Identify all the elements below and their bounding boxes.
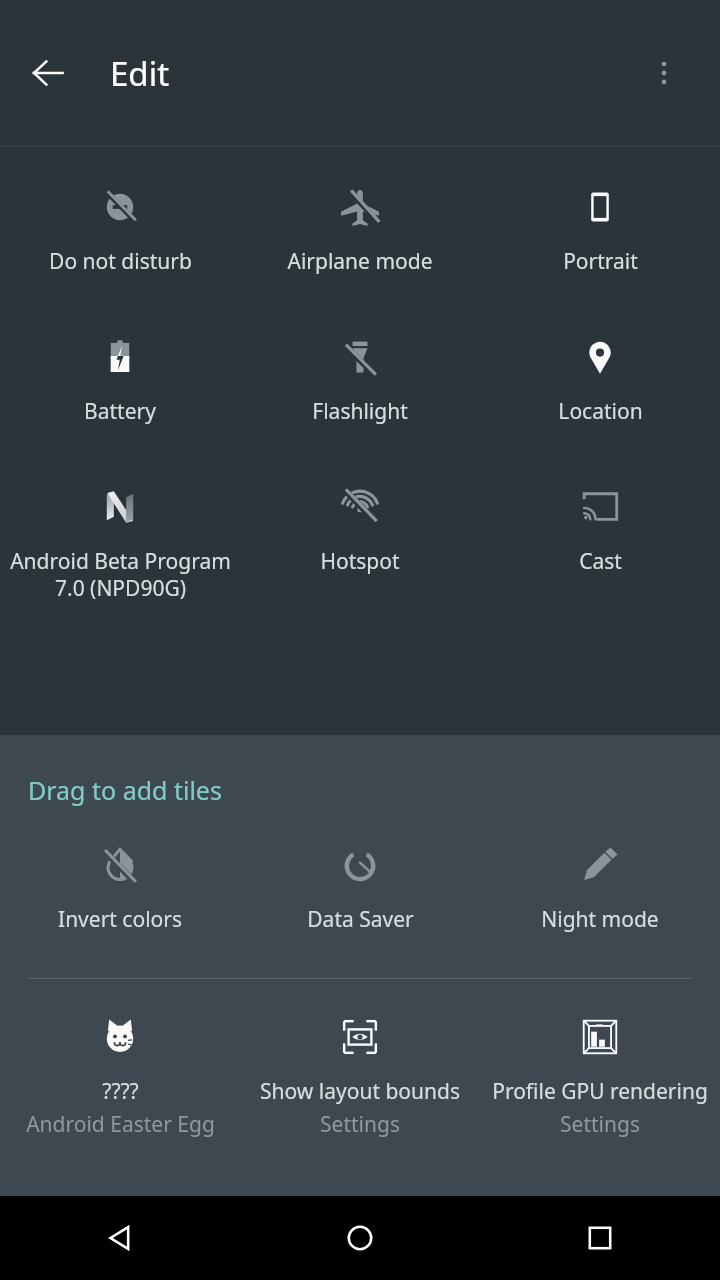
- button[interactable]: More options: [632, 41, 696, 105]
- button[interactable]: Do not disturb: [0, 185, 240, 276]
- staticText: Cast: [579, 547, 622, 576]
- button[interactable]: Profile GPU rendering: [480, 1015, 720, 1139]
- staticText: Battery: [84, 397, 156, 426]
- staticText: Drag to add tiles: [28, 773, 222, 807]
- staticText: Location: [558, 397, 643, 426]
- staticText: Hotspot: [320, 547, 400, 576]
- button[interactable]: Cast: [480, 485, 720, 576]
- button[interactable]: Recent apps: [480, 1196, 720, 1280]
- staticText: Data Saver: [307, 905, 414, 934]
- staticText: Do not disturb: [49, 247, 192, 276]
- staticText: Flashlight: [312, 397, 408, 426]
- staticText: Profile GPU rendering: [492, 1077, 708, 1106]
- button[interactable]: Back: [0, 1196, 240, 1280]
- staticText: Settings: [560, 1110, 640, 1139]
- staticText: Night mode: [541, 905, 659, 934]
- button[interactable]: Flashlight: [240, 335, 480, 426]
- staticText: Edit: [110, 51, 170, 96]
- button[interactable]: Invert colors: [0, 843, 240, 934]
- button[interactable]: Airplane mode: [240, 185, 480, 276]
- button[interactable]: Location: [480, 335, 720, 426]
- button[interactable]: Night mode: [480, 843, 720, 934]
- button[interactable]: Hotspot: [240, 485, 480, 576]
- staticText: Android Beta Program 7.0 (NPD90G): [10, 547, 231, 602]
- staticText: Invert colors: [58, 905, 182, 934]
- staticText: Airplane mode: [287, 247, 433, 276]
- staticText: ????: [102, 1077, 139, 1106]
- staticText: Settings: [320, 1110, 400, 1139]
- button[interactable]: Home: [240, 1196, 480, 1280]
- staticText: Portrait: [563, 247, 638, 276]
- button[interactable]: ????: [0, 1015, 240, 1139]
- button[interactable]: Battery: [0, 335, 240, 426]
- button[interactable]: Back: [16, 41, 80, 105]
- staticText: Android Easter Egg: [26, 1110, 215, 1139]
- button[interactable]: Android Beta Program 7.0 (NPD90G): [0, 485, 240, 602]
- button[interactable]: Portrait: [480, 185, 720, 276]
- staticText: Show layout bounds: [260, 1077, 460, 1106]
- button[interactable]: Data Saver: [240, 843, 480, 934]
- button[interactable]: Show layout bounds: [240, 1015, 480, 1139]
